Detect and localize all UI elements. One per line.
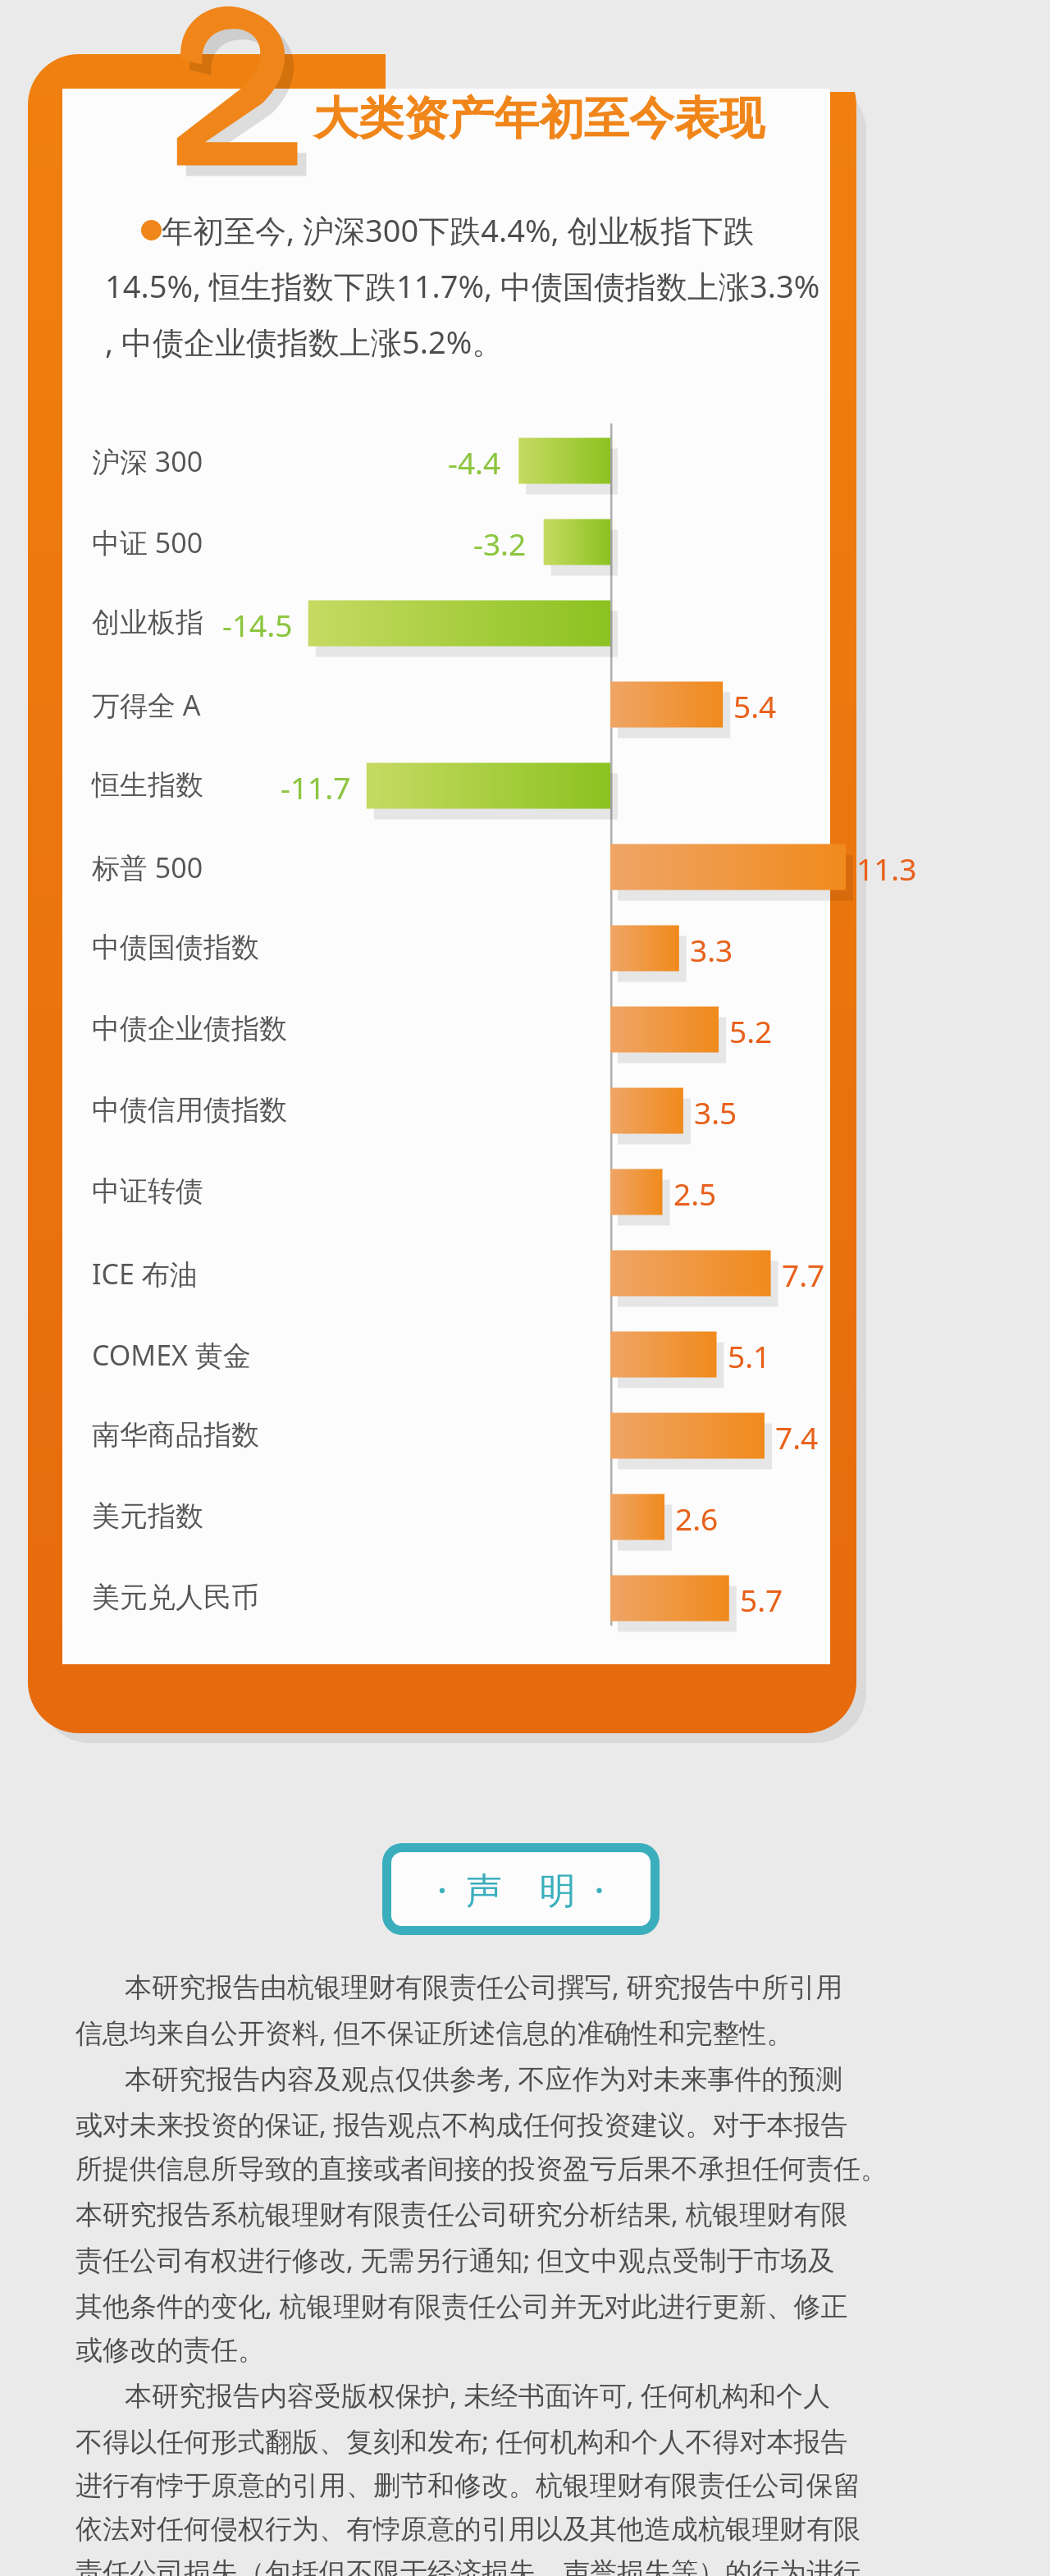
staticText: 中债国债指数 [92, 930, 259, 965]
staticText: 2.5 [673, 1173, 717, 1214]
staticText: 进行有悖于原意的引用、删节和修改。杭银理财有限责任公司保留 [75, 2468, 861, 2503]
staticText: 沪深 300 [92, 442, 203, 480]
staticText: 信息均来自公开资料, 但不保证所述信息的准确性和完整性。 [75, 2014, 794, 2051]
button[interactable]: 声明 [382, 1843, 660, 1935]
staticText: COMEX 黄金 [92, 1336, 251, 1374]
staticText: 7.4 [775, 1416, 819, 1457]
staticText: 所提供信息所导致的直接或者间接的投资盈亏后果不承担任何责任。 [75, 2152, 888, 2186]
staticText: 5.2 [729, 1010, 773, 1051]
staticText: 标普 500 [92, 849, 203, 886]
staticText: 或对未来投资的保证, 报告观点不构成任何投资建议。对于本报告 [75, 2106, 848, 2143]
staticText: 依法对任何侵权行为、有悖原意的引用以及其他造成杭银理财有限 [75, 2512, 861, 2546]
staticText: 中债信用债指数 [92, 1092, 287, 1128]
staticText: 本研究报告内容及观点仅供参考, 不应作为对未来事件的预测 [75, 2060, 843, 2097]
staticText: 5.7 [740, 1579, 783, 1620]
staticText: , 中债企业债指数上涨5.2%。 [105, 320, 504, 363]
staticText: 2.6 [675, 1498, 719, 1539]
staticText: 恒生指数 [92, 767, 203, 803]
staticText: 责任公司损失（包括但不限于经济损失、声誉损失等）的行为进行 [75, 2555, 861, 2576]
staticText: 中证转债 [92, 1174, 203, 1209]
staticText: 中债企业债指数 [92, 1011, 287, 1046]
staticText: -4.4 [448, 442, 501, 483]
staticText: 本研究报告由杭银理财有限责任公司撰写, 研究报告中所引用 [75, 1968, 843, 2005]
staticText: 本研究报告内容受版权保护, 未经书面许可, 任何机构和个人 [75, 2377, 830, 2414]
staticText: 5.1 [728, 1335, 771, 1376]
staticText: 美元兑人民币 [92, 1580, 259, 1615]
staticText: 本研究报告系杭银理财有限责任公司研究分析结果, 杭银理财有限 [75, 2195, 848, 2232]
staticText: · 声 明 · [437, 1865, 605, 1914]
staticText: -11.7 [281, 766, 351, 808]
staticText: ICE 布油 [92, 1255, 198, 1293]
staticText: 万得全 A [92, 686, 201, 724]
staticText: 年初至今, 沪深300下跌4.4%, 创业板指下跌 [162, 208, 755, 251]
staticText: 3.5 [694, 1091, 737, 1132]
staticText: 大类资产年初至今表现 [313, 90, 765, 147]
staticText: 11.3 [856, 848, 917, 889]
staticText: 7.7 [782, 1254, 825, 1295]
staticText: 南华商品指数 [92, 1417, 259, 1453]
staticText: 或修改的责任。 [75, 2333, 265, 2368]
staticText: 美元指数 [92, 1498, 203, 1534]
staticText: 创业板指 [92, 605, 203, 640]
staticText: 责任公司有权进行修改, 无需另行通知; 但文中观点受制于市场及 [75, 2241, 835, 2278]
staticText: 3.3 [690, 929, 733, 970]
staticText: 中证 500 [92, 524, 203, 561]
staticText: 不得以任何形式翻版、复刻和发布; 任何机构和个人不得对本报告 [75, 2423, 848, 2459]
staticText: 其他条件的变化, 杭银理财有限责任公司并无对此进行更新、修正 [75, 2287, 848, 2324]
staticText: 14.5%, 恒生指数下跌11.7%, 中债国债指数上涨3.3% [105, 264, 820, 307]
staticText: -3.2 [473, 523, 527, 564]
staticText: -14.5 [222, 604, 293, 645]
staticText: 5.4 [733, 685, 777, 726]
